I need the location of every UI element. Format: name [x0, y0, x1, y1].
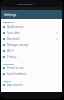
staticText: Send feedback [7, 72, 58, 76]
staticText: Privacy [7, 55, 58, 59]
staticText: Terms of use [7, 66, 58, 70]
staticText: Sync data [7, 31, 56, 35]
button[interactable]: Wi-Fi [1, 48, 62, 54]
button[interactable]: Terms of use [1, 65, 62, 71]
staticText: Notifications [7, 25, 58, 29]
staticText: ABOUT [3, 79, 12, 82]
button[interactable]: Send feedback [1, 71, 62, 77]
button[interactable]: Manage storage [1, 42, 62, 48]
button[interactable]: App version [1, 82, 62, 88]
staticText: Manage storage [7, 43, 58, 47]
button[interactable]: Sync data [1, 30, 62, 36]
staticText: Bluetooth [7, 37, 56, 41]
staticText: Settings [4, 13, 17, 17]
button[interactable]: Privacy [1, 54, 62, 60]
staticText: SUPPORT [3, 62, 14, 65]
button[interactable]: Bluetooth [1, 36, 62, 42]
button[interactable]: Notifications [1, 24, 62, 30]
staticText: GENERAL [3, 20, 14, 23]
staticText: App version [7, 83, 58, 87]
staticText: Wi-Fi [7, 49, 58, 53]
